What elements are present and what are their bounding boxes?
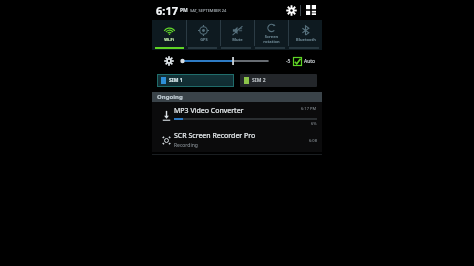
- staticText: Recording: [174, 142, 198, 149]
- staticText: SIM 1: [169, 77, 183, 84]
- staticText: MP3 Video Converter: [174, 106, 301, 116]
- staticText: 6:17 PM: [301, 106, 317, 111]
- staticText: 6:17: [156, 3, 178, 18]
- button[interactable]: MP3 Video Converter: [152, 102, 322, 128]
- staticText: Screen rotation: [263, 34, 280, 44]
- button[interactable]: Brightness: [162, 54, 176, 68]
- button[interactable]: SIM 1: [157, 74, 234, 87]
- button[interactable]: SIM 2: [240, 74, 317, 87]
- button[interactable]: Wi-Fi: [152, 20, 186, 46]
- button[interactable]: Settings: [283, 2, 299, 18]
- staticText: -5: [286, 58, 291, 65]
- staticText: SCR Screen Recorder Pro: [174, 131, 256, 141]
- button[interactable]: Screen rotation: [255, 20, 288, 46]
- button[interactable]: Edit quick settings: [303, 2, 319, 18]
- button[interactable]: SCR Screen Recorder Pro: [152, 128, 322, 152]
- staticText: GPS: [200, 37, 208, 42]
- staticText: Auto: [304, 58, 316, 65]
- staticText: SIM 2: [252, 77, 266, 84]
- staticText: Mute: [232, 37, 243, 42]
- staticText: 6%: [311, 121, 317, 126]
- staticText: PM: [180, 7, 188, 14]
- staticText: Wi-Fi: [164, 37, 174, 42]
- button[interactable]: Auto brightness: [293, 57, 302, 66]
- staticText: 6:08: [309, 138, 317, 143]
- button[interactable]: Mute: [221, 20, 254, 46]
- staticText: SAT, SEPTEMBER 24: [190, 8, 227, 13]
- staticText: Bluetooth: [296, 37, 316, 42]
- button[interactable]: Brightness slider: [180, 54, 283, 68]
- staticText: Ongoing: [157, 93, 183, 101]
- button[interactable]: Bluetooth: [289, 20, 322, 46]
- button[interactable]: GPS: [187, 20, 220, 46]
